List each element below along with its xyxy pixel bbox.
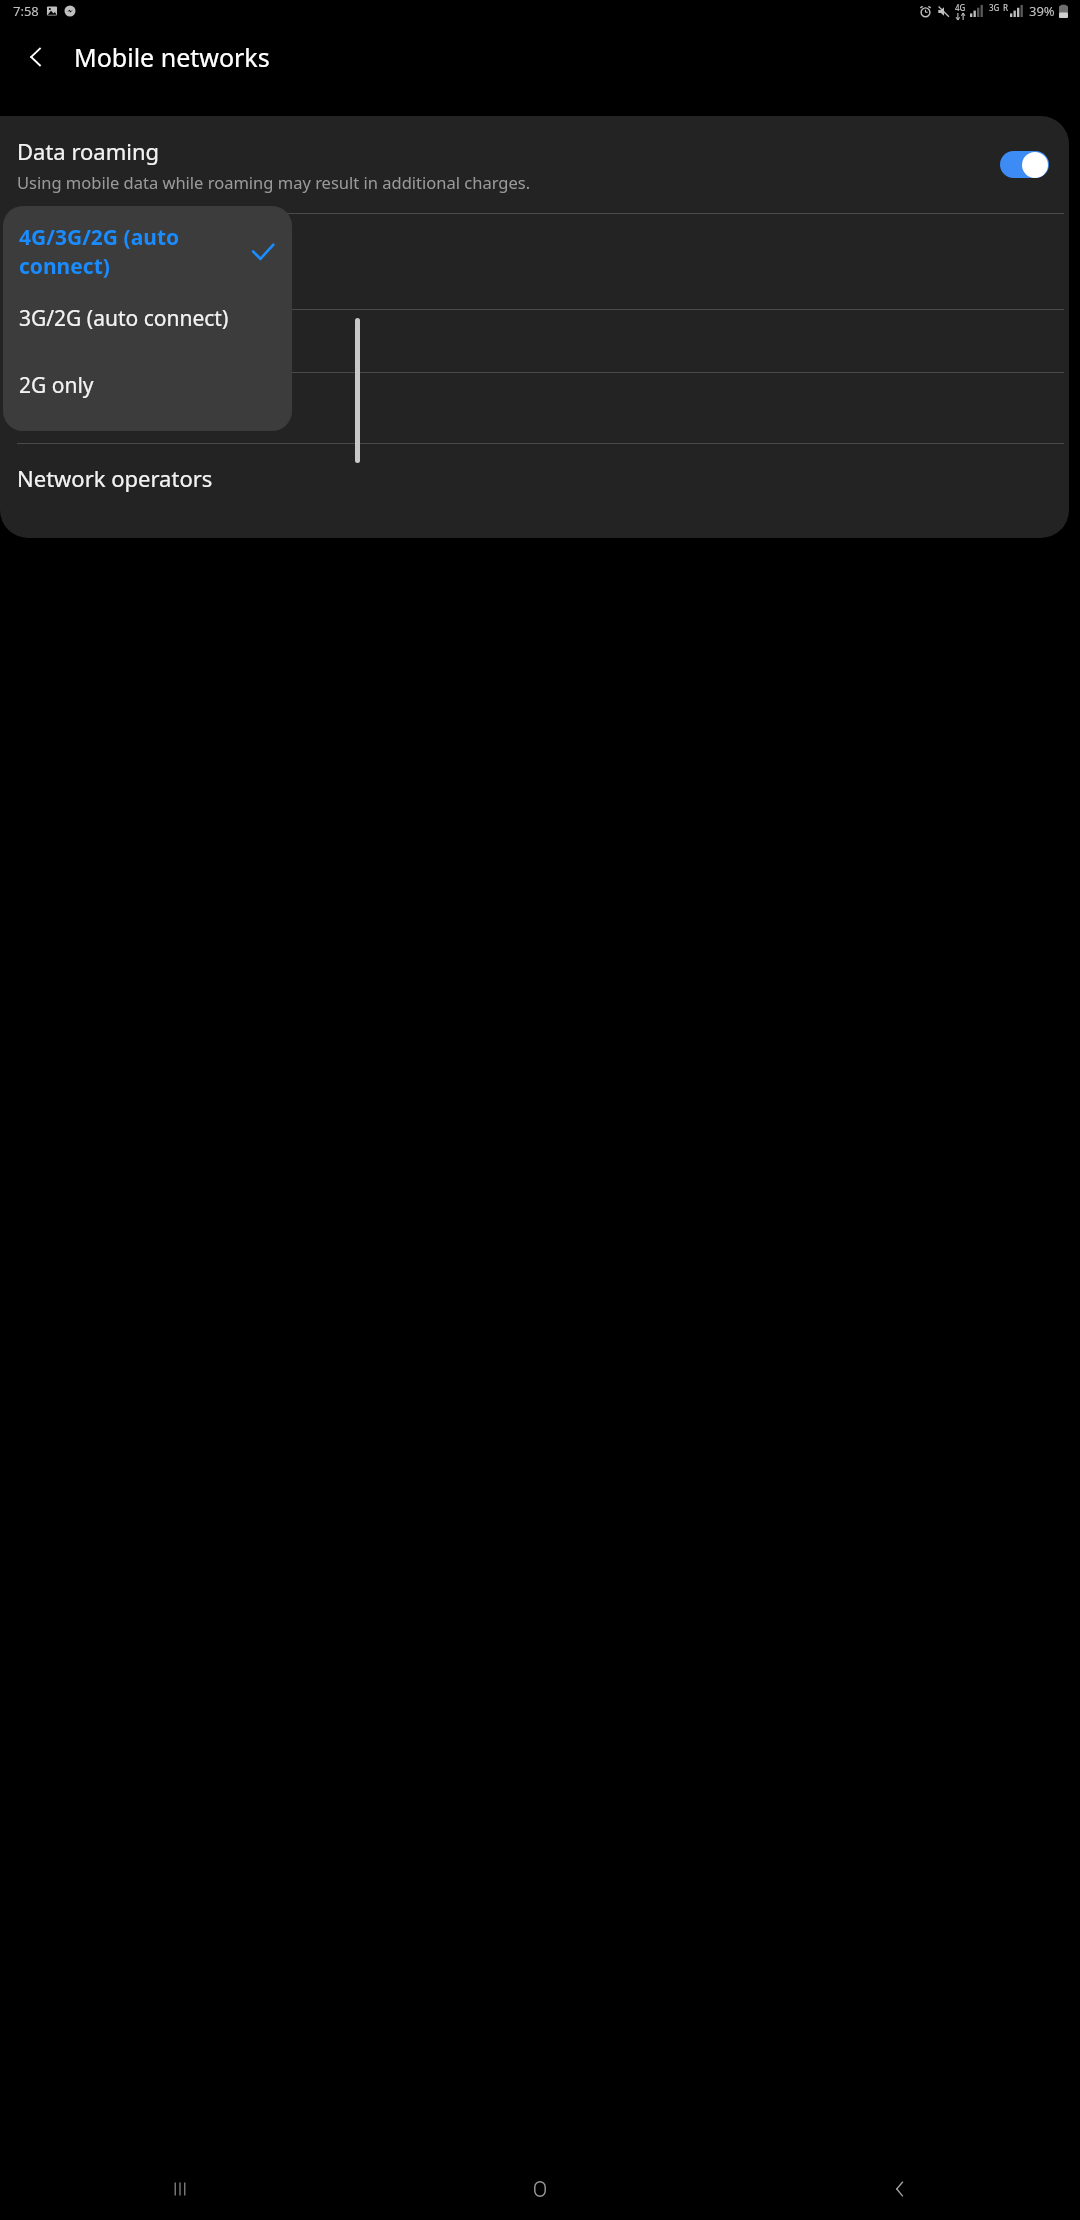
button[interactable]: Network mode SIM 1 xyxy=(0,214,1069,309)
staticText: Network operators xyxy=(17,463,213,493)
staticText: 4G xyxy=(955,2,966,13)
staticText: Using mobile data while roaming may resu… xyxy=(17,171,531,193)
staticText: Data roaming xyxy=(17,136,160,166)
button[interactable]: Recent apps xyxy=(0,2157,360,2220)
button[interactable]: Data roaming xyxy=(0,116,1069,213)
staticText: 2G only xyxy=(19,371,276,400)
staticText: 4G/3G/2G (auto connect) xyxy=(19,223,250,281)
staticText: R xyxy=(1003,2,1009,13)
staticText: Mobile networks xyxy=(74,40,270,74)
staticText: 7:58 xyxy=(13,2,39,20)
button[interactable]: Network operators xyxy=(0,444,1069,512)
button[interactable]: Data roaming toggle xyxy=(1000,151,1049,178)
button[interactable]: Home xyxy=(360,2157,720,2220)
button[interactable]: 3G/2G (auto connect) xyxy=(3,285,292,352)
button[interactable]: Back xyxy=(720,2157,1080,2220)
button[interactable]: Back xyxy=(10,31,62,83)
button[interactable]: 4G/3G/2G (auto connect) xyxy=(3,218,292,285)
staticText: Network mode SIM 1 xyxy=(17,233,235,263)
staticText: 3G xyxy=(989,2,1000,13)
staticText: 3G/2G (auto connect) xyxy=(19,304,276,333)
staticText: 4G/3G/2G (auto connect) xyxy=(17,267,215,290)
button[interactable]: 2G only xyxy=(3,352,292,419)
staticText: 39% xyxy=(1029,2,1055,20)
